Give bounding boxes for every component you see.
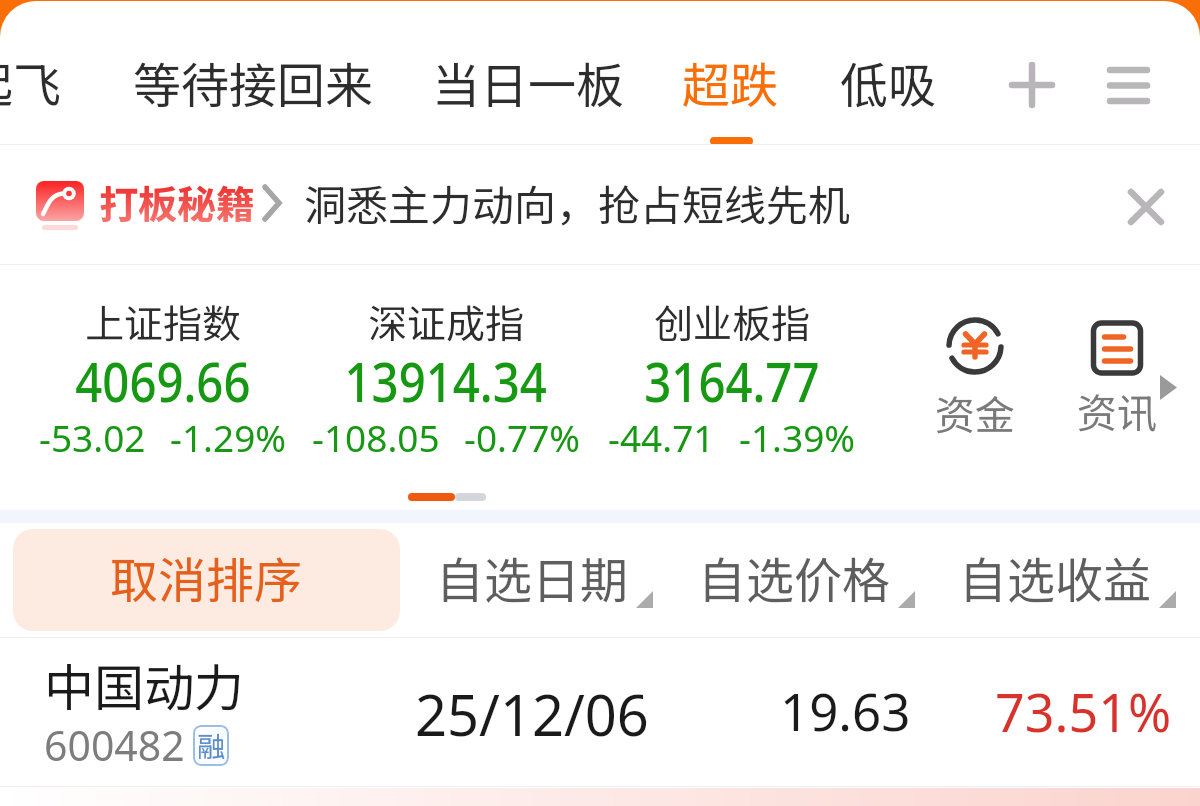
button[interactable]: 当日一板 — [432, 47, 625, 117]
staticText: 低吸 — [840, 47, 937, 117]
button[interactable]: 超跌 — [682, 47, 779, 117]
button[interactable]: 低吸 — [840, 47, 937, 117]
staticText: 73.51% — [995, 676, 1172, 747]
staticText: 自选收益 — [959, 542, 1152, 612]
button[interactable]: 等待接回来 — [133, 47, 374, 117]
staticText: 打板秘籍 — [99, 174, 256, 230]
staticText: 自选日期 — [436, 542, 629, 612]
staticText: -1.39% — [739, 412, 856, 462]
button[interactable]: 上证指数 — [13, 265, 313, 465]
staticText: 自选价格 — [698, 542, 891, 612]
button[interactable]: Menu — [1100, 57, 1156, 113]
staticText: 3164.77 — [644, 343, 820, 418]
button[interactable]: 自选日期 — [436, 529, 653, 631]
staticText: 中国动力 — [44, 648, 244, 720]
button[interactable] — [0, 145, 1200, 264]
staticText: 融 — [197, 725, 226, 766]
staticText: 起飞 — [0, 47, 62, 117]
button[interactable]: 中国动力 — [0, 638, 1200, 787]
button[interactable]: 深证成指 — [296, 265, 596, 465]
staticText: 洞悉主力动向，抢占短线先机 — [304, 172, 851, 233]
staticText: 当日一板 — [432, 47, 625, 117]
button[interactable]: 资讯 — [1057, 319, 1177, 440]
staticText: 19.63 — [780, 676, 911, 745]
staticText: 上证指数 — [85, 293, 242, 349]
staticText: 等待接回来 — [133, 47, 374, 117]
button[interactable]: 自选价格 — [698, 529, 915, 631]
staticText: 13914.34 — [344, 343, 547, 418]
button[interactable]: 创业板指 — [582, 265, 882, 465]
staticText: -53.02 — [39, 412, 146, 462]
staticText: 25/12/06 — [415, 676, 649, 752]
button[interactable]: 资金 — [915, 317, 1035, 442]
button[interactable]: Close — [1114, 175, 1178, 239]
staticText: 创业板指 — [654, 293, 811, 349]
button[interactable]: 起飞 — [0, 47, 62, 117]
staticText: -0.77% — [464, 412, 581, 462]
button[interactable]: Add group — [1004, 57, 1060, 113]
staticText: -108.05 — [312, 412, 440, 462]
staticText: 4069.66 — [75, 343, 251, 418]
staticText: 深证成指 — [368, 293, 525, 349]
staticText: -44.71 — [608, 412, 715, 462]
staticText: 取消排序 — [110, 542, 303, 612]
staticText: 600482 — [44, 717, 185, 773]
staticText: -1.29% — [170, 412, 287, 462]
button[interactable]: 自选收益 — [959, 529, 1176, 631]
staticText: 超跌 — [682, 47, 779, 117]
button[interactable]: 取消排序 — [13, 529, 400, 631]
staticText: 资金 — [935, 384, 1015, 442]
staticText: 资讯 — [1077, 382, 1157, 440]
